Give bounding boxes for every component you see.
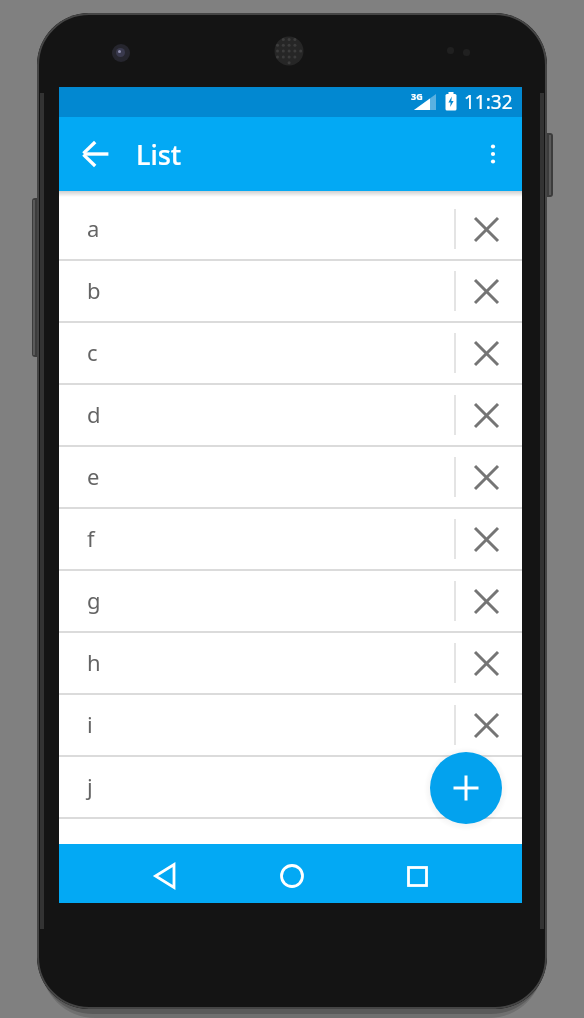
button[interactable] <box>456 509 522 569</box>
staticText: List <box>136 136 182 173</box>
button[interactable] <box>268 852 316 900</box>
button[interactable] <box>469 130 517 178</box>
staticText: g <box>87 585 101 615</box>
button[interactable] <box>456 571 522 631</box>
button[interactable] <box>141 852 189 900</box>
button[interactable]: d <box>59 385 522 447</box>
button[interactable]: h <box>59 633 522 695</box>
staticText: d <box>87 399 101 429</box>
staticText: 11:32 <box>464 89 513 115</box>
button[interactable] <box>456 695 522 755</box>
staticText: f <box>87 523 95 553</box>
staticText: i <box>87 709 93 739</box>
staticText: 3G <box>411 90 423 102</box>
staticText: a <box>87 213 100 243</box>
button[interactable] <box>430 752 502 824</box>
button[interactable] <box>456 323 522 383</box>
staticText: c <box>87 337 98 367</box>
button[interactable]: c <box>59 323 522 385</box>
button[interactable]: i <box>59 695 522 757</box>
button[interactable] <box>456 447 522 507</box>
staticText: b <box>87 275 101 305</box>
button[interactable]: j <box>59 757 522 819</box>
button[interactable] <box>456 633 522 693</box>
button[interactable] <box>456 261 522 321</box>
button[interactable] <box>456 385 522 445</box>
button[interactable]: b <box>59 261 522 323</box>
staticText: h <box>87 647 101 677</box>
button[interactable]: a <box>59 199 522 261</box>
button[interactable]: f <box>59 509 522 571</box>
button[interactable] <box>393 852 441 900</box>
button[interactable]: e <box>59 447 522 509</box>
button[interactable]: g <box>59 571 522 633</box>
button[interactable] <box>456 757 522 817</box>
staticText: j <box>87 771 93 801</box>
button[interactable] <box>72 130 120 178</box>
staticText: e <box>87 461 100 491</box>
button[interactable] <box>456 199 522 259</box>
